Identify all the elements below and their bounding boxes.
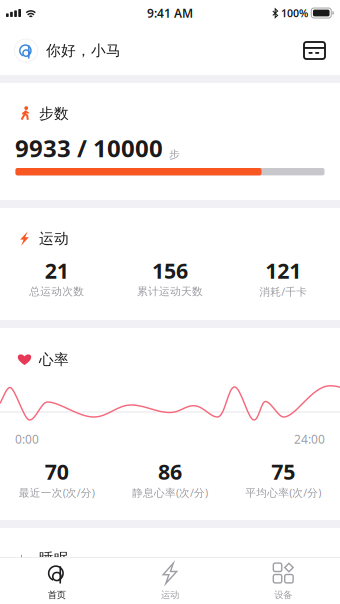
staticText: 设备 (274, 589, 292, 601)
staticText: 121 (265, 256, 301, 285)
staticText: 首页 (48, 589, 66, 601)
staticText: 总运动次数 (29, 285, 84, 298)
staticText: 9:41 AM (147, 5, 193, 21)
staticText: 心率 (39, 350, 69, 368)
button[interactable]: 会员卡 (304, 30, 340, 71)
staticText: 步数 (39, 104, 69, 122)
staticText: 最近一次(次/分) (19, 485, 95, 500)
staticText: 你好，小马 (46, 41, 121, 59)
button[interactable]: 你好，小马 (0, 28, 121, 72)
staticText: 睡眠 (39, 549, 69, 567)
staticText: 75 (271, 457, 295, 486)
button[interactable]: 设备 (227, 558, 340, 604)
staticText: 平均心率(次/分) (245, 485, 321, 500)
staticText: 累计运动天数 (137, 285, 203, 298)
staticText: 21 (45, 256, 69, 285)
staticText: 86 (158, 457, 182, 486)
staticText: 24:00 (294, 431, 325, 447)
staticText: 156 (152, 256, 188, 285)
staticText: 70 (45, 457, 69, 486)
staticText: 步 (169, 148, 180, 161)
staticText: 运动 (39, 229, 69, 247)
staticText: 消耗/千卡 (259, 284, 307, 299)
button[interactable]: 运动 (113, 558, 227, 604)
staticText: 静息心率(次/分) (132, 485, 208, 500)
staticText: 运动 (161, 589, 179, 601)
staticText: 0:00 (15, 431, 39, 447)
button[interactable]: 首页 (0, 558, 113, 604)
staticText: 9933 / 10000 (15, 132, 163, 164)
staticText: 100% (281, 6, 308, 20)
